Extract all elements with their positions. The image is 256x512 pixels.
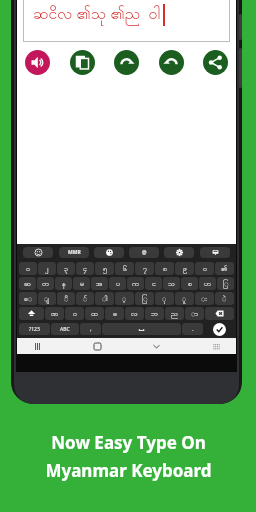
button[interactable]: ဟ xyxy=(199,277,216,290)
staticText: န xyxy=(62,279,66,289)
button[interactable]: ြ xyxy=(135,292,154,305)
button[interactable]: ူ xyxy=(175,292,194,305)
button[interactable]: င xyxy=(145,277,162,290)
button[interactable]: Redo xyxy=(114,50,139,75)
staticText: က xyxy=(132,279,139,289)
button[interactable]: အ xyxy=(91,277,108,290)
staticText: ဘ xyxy=(151,309,158,319)
button[interactable]: Share xyxy=(203,50,228,75)
button[interactable]: ၂ xyxy=(38,262,56,275)
button[interactable]: ?123 xyxy=(19,323,50,335)
button[interactable]: ာ xyxy=(185,307,204,320)
staticText: လ xyxy=(131,309,138,319)
staticText: သ xyxy=(168,279,175,289)
button[interactable]: ၀ xyxy=(195,262,214,275)
button[interactable]: ၈ xyxy=(155,262,174,275)
button[interactable]: တ xyxy=(37,277,54,290)
button[interactable]: Space xyxy=(102,323,181,335)
button[interactable]: . xyxy=(182,323,203,335)
staticText: ၄ xyxy=(83,264,87,274)
button[interactable]: ၉ xyxy=(175,262,194,275)
button[interactable]: ABC xyxy=(51,323,79,335)
button[interactable]: ် xyxy=(76,292,94,305)
button[interactable]: ဲ xyxy=(215,292,234,305)
button[interactable]: ု xyxy=(155,292,174,305)
staticText: ၀ xyxy=(26,264,30,274)
staticText: ့ xyxy=(122,294,127,304)
button[interactable]: Enter xyxy=(204,322,234,336)
button[interactable]: န xyxy=(55,277,72,290)
button[interactable]: ၃ xyxy=(57,262,75,275)
staticText: ူ xyxy=(182,294,187,304)
staticText: ၅ xyxy=(103,264,107,274)
staticText: မ xyxy=(80,279,84,289)
button[interactable]: ည xyxy=(165,307,184,320)
button[interactable]: ၅ xyxy=(95,262,114,275)
button[interactable]: း xyxy=(195,292,214,305)
button[interactable]: ၀ xyxy=(19,262,37,275)
button[interactable]: ၇ xyxy=(135,262,154,275)
staticText: ?123 xyxy=(29,326,40,333)
staticText: ဆငိလ ၏သု ၏ည ၀ါ xyxy=(33,2,161,27)
staticText: ၂ xyxy=(45,264,49,274)
button[interactable]: Shift xyxy=(19,307,44,320)
staticText: ိ xyxy=(64,294,69,304)
button[interactable]: ေ xyxy=(19,292,37,305)
button[interactable]: ဆ xyxy=(19,277,36,290)
button[interactable]: Settings xyxy=(164,247,194,258)
button[interactable]: ါ xyxy=(95,292,114,305)
button[interactable]: Copy xyxy=(70,50,95,75)
button[interactable]: ြ xyxy=(217,277,234,290)
button[interactable]: ဆငိလ ၏သု ၏ည ၀ါ xyxy=(23,0,230,42)
button[interactable]: ျ xyxy=(38,292,56,305)
button[interactable]: Theme xyxy=(94,247,124,258)
button[interactable]: ဓ xyxy=(105,307,124,320)
button[interactable]: Emoji xyxy=(23,247,53,258)
staticText: အ xyxy=(96,279,103,289)
button[interactable]: Back xyxy=(150,340,162,352)
button[interactable]: စ xyxy=(181,277,198,290)
button[interactable]: သ xyxy=(163,277,180,290)
staticText: ် xyxy=(83,294,88,304)
staticText: ၃ xyxy=(64,264,68,274)
staticText: င xyxy=(152,279,156,289)
staticText: Myanmar Keyboard xyxy=(45,459,212,482)
button[interactable]: Speak xyxy=(25,50,50,75)
staticText: ဲ xyxy=(222,294,227,304)
button[interactable]: ၏ xyxy=(215,262,234,275)
button[interactable]: မ xyxy=(73,277,90,290)
button[interactable]: Undo xyxy=(159,50,184,75)
button[interactable]: ထ xyxy=(85,307,104,320)
button[interactable]: Recents xyxy=(31,340,43,352)
button[interactable]: ဝ xyxy=(65,307,84,320)
button[interactable]: , xyxy=(80,323,101,335)
staticText: ျ xyxy=(44,294,50,304)
staticText: @ xyxy=(142,249,147,256)
staticText: Now Easy Type On xyxy=(51,431,206,454)
staticText: ဓ xyxy=(113,309,117,319)
staticText: ၏ xyxy=(221,264,228,274)
button[interactable]: ပ xyxy=(109,277,126,290)
button[interactable]: Clipboard xyxy=(200,247,230,258)
staticText: . xyxy=(192,325,194,333)
button[interactable]: ့ xyxy=(115,292,134,305)
button[interactable]: က xyxy=(127,277,144,290)
button[interactable]: ၄ xyxy=(76,262,94,275)
staticText: ြ xyxy=(142,294,148,304)
button[interactable]: Backspace xyxy=(205,307,234,320)
button[interactable]: ိ xyxy=(57,292,75,305)
button[interactable]: ၆ xyxy=(115,262,134,275)
button[interactable]: ဏ xyxy=(45,307,64,320)
button[interactable]: ဘ xyxy=(145,307,164,320)
staticText: ြ xyxy=(223,279,229,289)
button[interactable]: @ xyxy=(129,247,159,258)
button[interactable]: Home xyxy=(91,340,103,352)
staticText: ု xyxy=(162,294,167,304)
button[interactable]: MMR xyxy=(59,247,89,258)
staticText: ABC xyxy=(60,326,70,333)
button[interactable]: Keyboard switcher xyxy=(210,340,222,352)
staticText: ာ xyxy=(191,309,199,319)
button[interactable]: လ xyxy=(125,307,144,320)
staticText: ေ xyxy=(24,294,33,304)
staticText: ၉ xyxy=(183,264,187,274)
